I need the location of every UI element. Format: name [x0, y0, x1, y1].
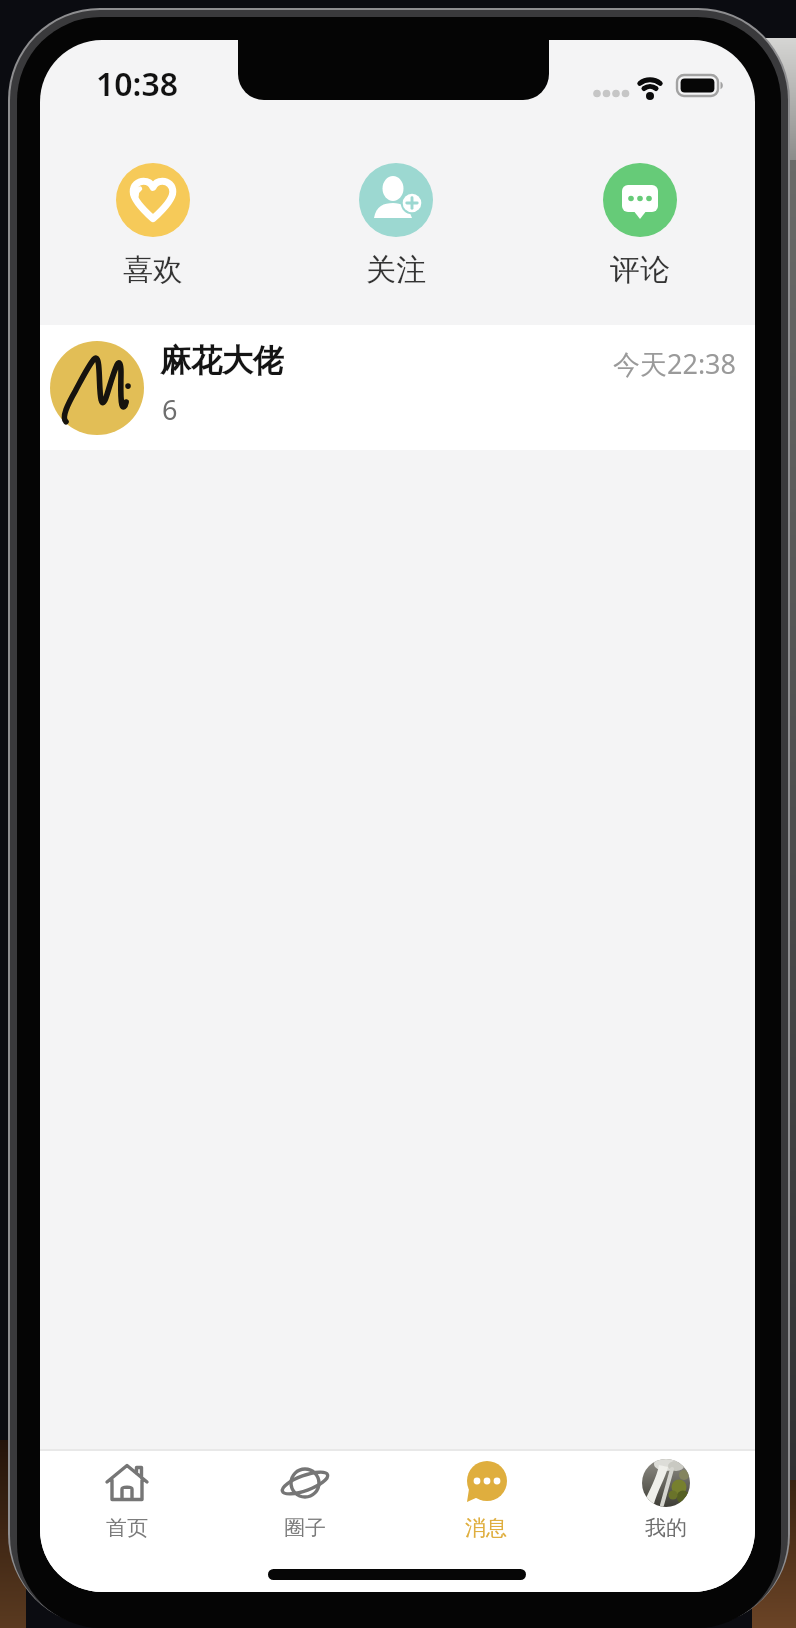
button[interactable]: 关注 [336, 163, 456, 289]
button[interactable]: 圈子 [245, 1460, 365, 1541]
staticText: 关注 [336, 251, 456, 289]
button[interactable]: 评论 [580, 163, 700, 289]
button[interactable]: 我的 [606, 1460, 726, 1541]
staticText: 消息 [426, 1515, 546, 1541]
button[interactable]: 麻花大佬 [40, 325, 755, 450]
button[interactable]: 消息 [426, 1460, 546, 1541]
staticText: 我的 [606, 1515, 726, 1541]
staticText: 10:38 [96, 62, 179, 106]
staticText: 圈子 [245, 1515, 365, 1541]
staticText: 6 [162, 391, 178, 428]
staticText: 首页 [67, 1515, 187, 1541]
staticText: 麻花大佬 [160, 341, 284, 380]
staticText: 评论 [580, 251, 700, 289]
button[interactable]: 喜欢 [93, 163, 213, 289]
staticText: 今天22:38 [613, 345, 737, 382]
staticText: 喜欢 [93, 251, 213, 289]
button[interactable]: 首页 [67, 1460, 187, 1541]
